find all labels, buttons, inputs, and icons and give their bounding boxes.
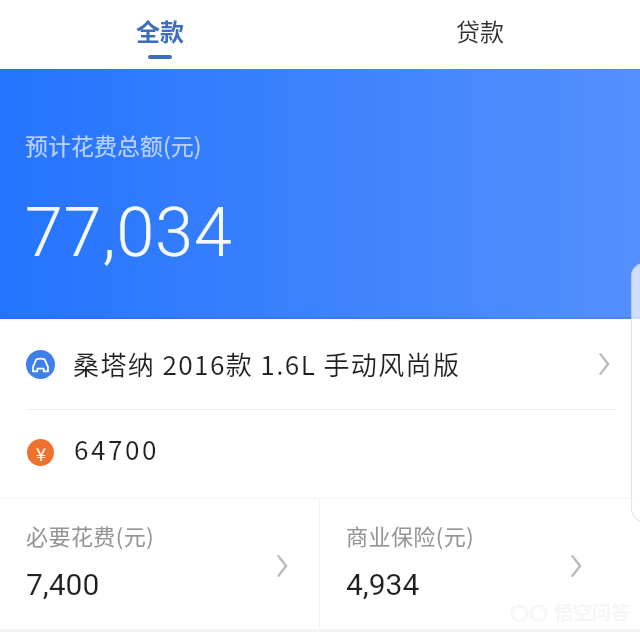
staticText: 4,934	[346, 567, 420, 602]
other: 车型	[26, 350, 55, 379]
other: 查看详情	[276, 555, 288, 577]
staticText: 77,034	[25, 193, 233, 273]
staticText: 7,400	[26, 567, 100, 602]
other: 价格	[27, 439, 54, 466]
staticText: 64700	[74, 430, 160, 468]
button[interactable]: 全款	[0, 0, 320, 69]
button[interactable]: 贷款	[320, 0, 640, 69]
staticText: 预计花费总额(元)	[25, 128, 202, 161]
staticText: 悟空问答	[554, 598, 631, 626]
other: 查看详情	[570, 555, 582, 577]
staticText: 贷款	[456, 13, 504, 48]
staticText: ¥	[36, 440, 46, 466]
other: 查看详情	[598, 353, 610, 375]
button[interactable]: 商业保险(元)	[320, 499, 640, 632]
staticText: 桑塔纳 2016款 1.6L 手动风尚版	[73, 345, 461, 383]
staticText: 全款	[136, 13, 184, 48]
button[interactable]: 必要花费(元)	[0, 499, 319, 632]
button[interactable]: 车型	[0, 319, 640, 409]
staticText: 必要花费(元)	[26, 519, 155, 551]
staticText: 商业保险(元)	[346, 519, 475, 551]
button[interactable]: 价格	[0, 410, 640, 498]
